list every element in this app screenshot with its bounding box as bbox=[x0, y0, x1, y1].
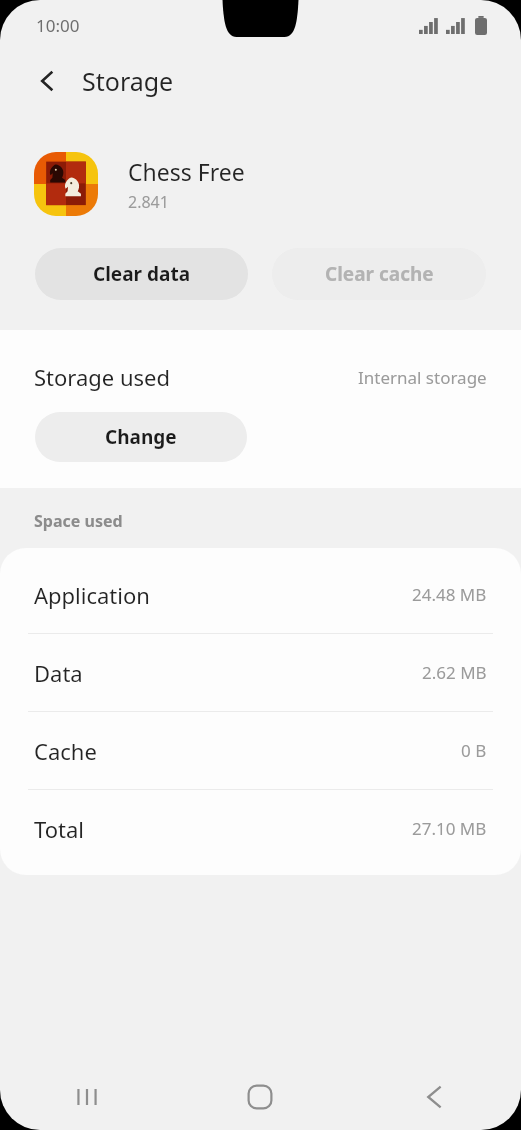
button[interactable]: Back bbox=[347, 1064, 521, 1130]
staticText: Space used bbox=[34, 510, 123, 532]
staticText: 0 B bbox=[461, 739, 487, 762]
staticText: Clear cache bbox=[325, 261, 434, 287]
staticText: Storage bbox=[82, 64, 174, 98]
staticText: 2.62 MB bbox=[422, 661, 487, 684]
staticText: Data bbox=[34, 658, 83, 688]
button[interactable]: Change bbox=[35, 412, 247, 462]
staticText: Internal storage bbox=[358, 366, 487, 389]
button[interactable]: Recents bbox=[0, 1064, 173, 1130]
staticText: 24.48 MB bbox=[412, 583, 487, 606]
button[interactable]: Cache bbox=[0, 712, 521, 789]
staticText: Application bbox=[34, 580, 150, 610]
button[interactable]: Clear data bbox=[35, 248, 248, 300]
staticText: Total bbox=[34, 814, 84, 844]
staticText: Cache bbox=[34, 736, 97, 766]
button[interactable]: Total bbox=[0, 790, 521, 867]
button[interactable]: Storage used bbox=[0, 362, 521, 392]
staticText: 10:00 bbox=[36, 14, 80, 37]
staticText: Change bbox=[105, 424, 177, 450]
button[interactable]: Home bbox=[173, 1064, 347, 1130]
staticText: Chess Free bbox=[128, 156, 245, 187]
staticText: 2.841 bbox=[128, 191, 169, 213]
staticText: 27.10 MB bbox=[412, 817, 487, 840]
button[interactable]: Clear cache bbox=[272, 248, 486, 300]
staticText: Clear data bbox=[93, 261, 191, 287]
button[interactable]: Navigate up bbox=[25, 59, 69, 103]
staticText: Storage used bbox=[34, 362, 171, 392]
button[interactable]: Data bbox=[0, 634, 521, 711]
button[interactable]: Application bbox=[0, 556, 521, 633]
